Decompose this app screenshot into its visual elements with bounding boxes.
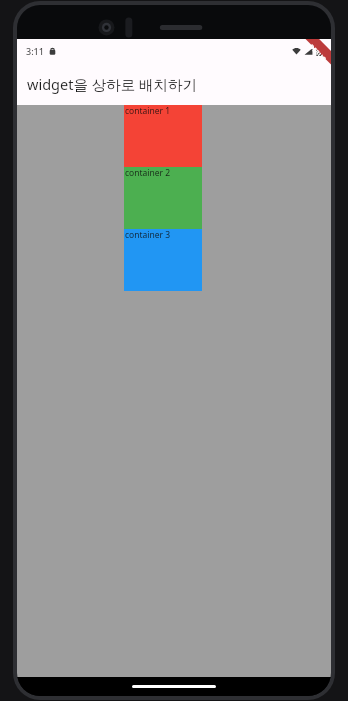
- staticText: DEBUG: [307, 43, 328, 63]
- staticText: container 2: [125, 167, 171, 179]
- other: Battery: [316, 47, 322, 56]
- button[interactable]: container 3: [124, 229, 202, 291]
- staticText: 3:11: [26, 45, 44, 57]
- other: Signal: [304, 47, 313, 56]
- button[interactable]: container 2: [124, 167, 202, 229]
- staticText: container 1: [125, 105, 171, 117]
- button[interactable]: container 1: [124, 105, 202, 167]
- other: Wi-Fi: [292, 47, 301, 56]
- other: Home: [132, 685, 216, 688]
- staticText: widget을 상하로 배치하기: [27, 74, 197, 94]
- staticText: container 3: [125, 229, 171, 241]
